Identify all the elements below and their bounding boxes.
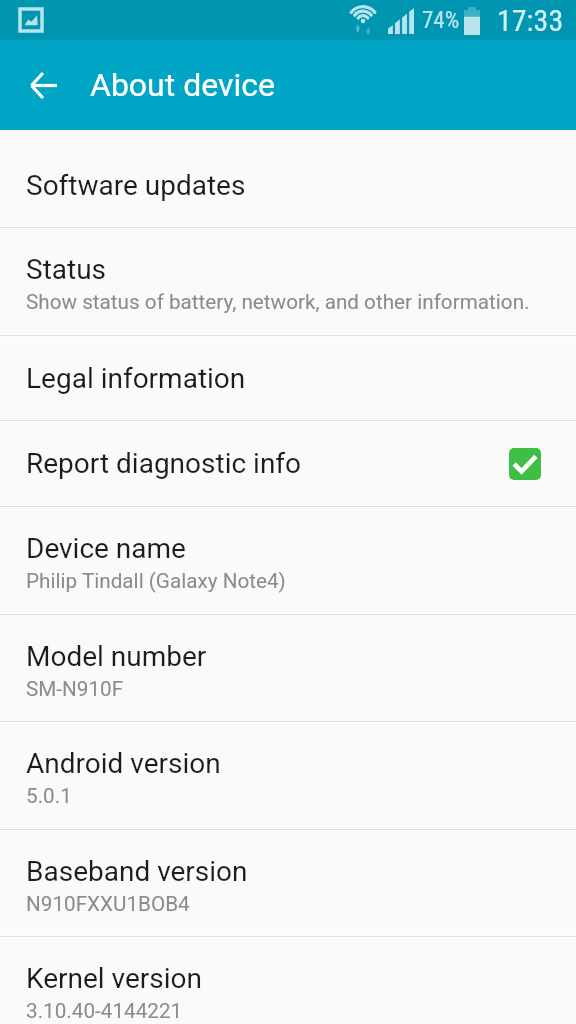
staticText: Show status of battery, network, and oth…: [26, 290, 530, 314]
button[interactable]: Software updates: [0, 144, 576, 227]
staticText: 5.0.1: [26, 784, 72, 808]
button[interactable]: Report diagnostic info checkbox, checked: [509, 448, 541, 480]
button[interactable]: Device name: [0, 507, 576, 614]
staticText: Kernel version: [26, 962, 203, 995]
staticText: 17:33: [497, 3, 564, 38]
button[interactable]: Status: [0, 228, 576, 335]
button[interactable]: Legal information: [0, 336, 576, 420]
button[interactable]: Kernel version: [0, 937, 576, 1024]
staticText: 74%: [422, 7, 460, 34]
staticText: Software updates: [26, 169, 246, 202]
staticText: Model number: [26, 640, 207, 673]
button[interactable]: Baseband version: [0, 830, 576, 936]
staticText: Status: [26, 253, 107, 286]
button[interactable]: Android version: [0, 722, 576, 829]
staticText: 3.10.40-4144221: [26, 999, 183, 1023]
staticText: SM-N910F: [26, 677, 124, 701]
staticText: Device name: [26, 532, 186, 565]
staticText: Baseband version: [26, 855, 248, 888]
staticText: N910FXXU1BOB4: [26, 892, 190, 916]
staticText: Legal information: [26, 362, 246, 395]
staticText: Philip Tindall (Galaxy Note4): [26, 569, 286, 593]
button[interactable]: Report diagnostic info: [0, 421, 576, 506]
staticText: About device: [90, 66, 275, 104]
staticText: Report diagnostic info: [26, 447, 302, 480]
button[interactable]: Model number: [0, 615, 576, 721]
staticText: Android version: [26, 747, 221, 780]
button[interactable]: Navigate up: [0, 40, 76, 130]
